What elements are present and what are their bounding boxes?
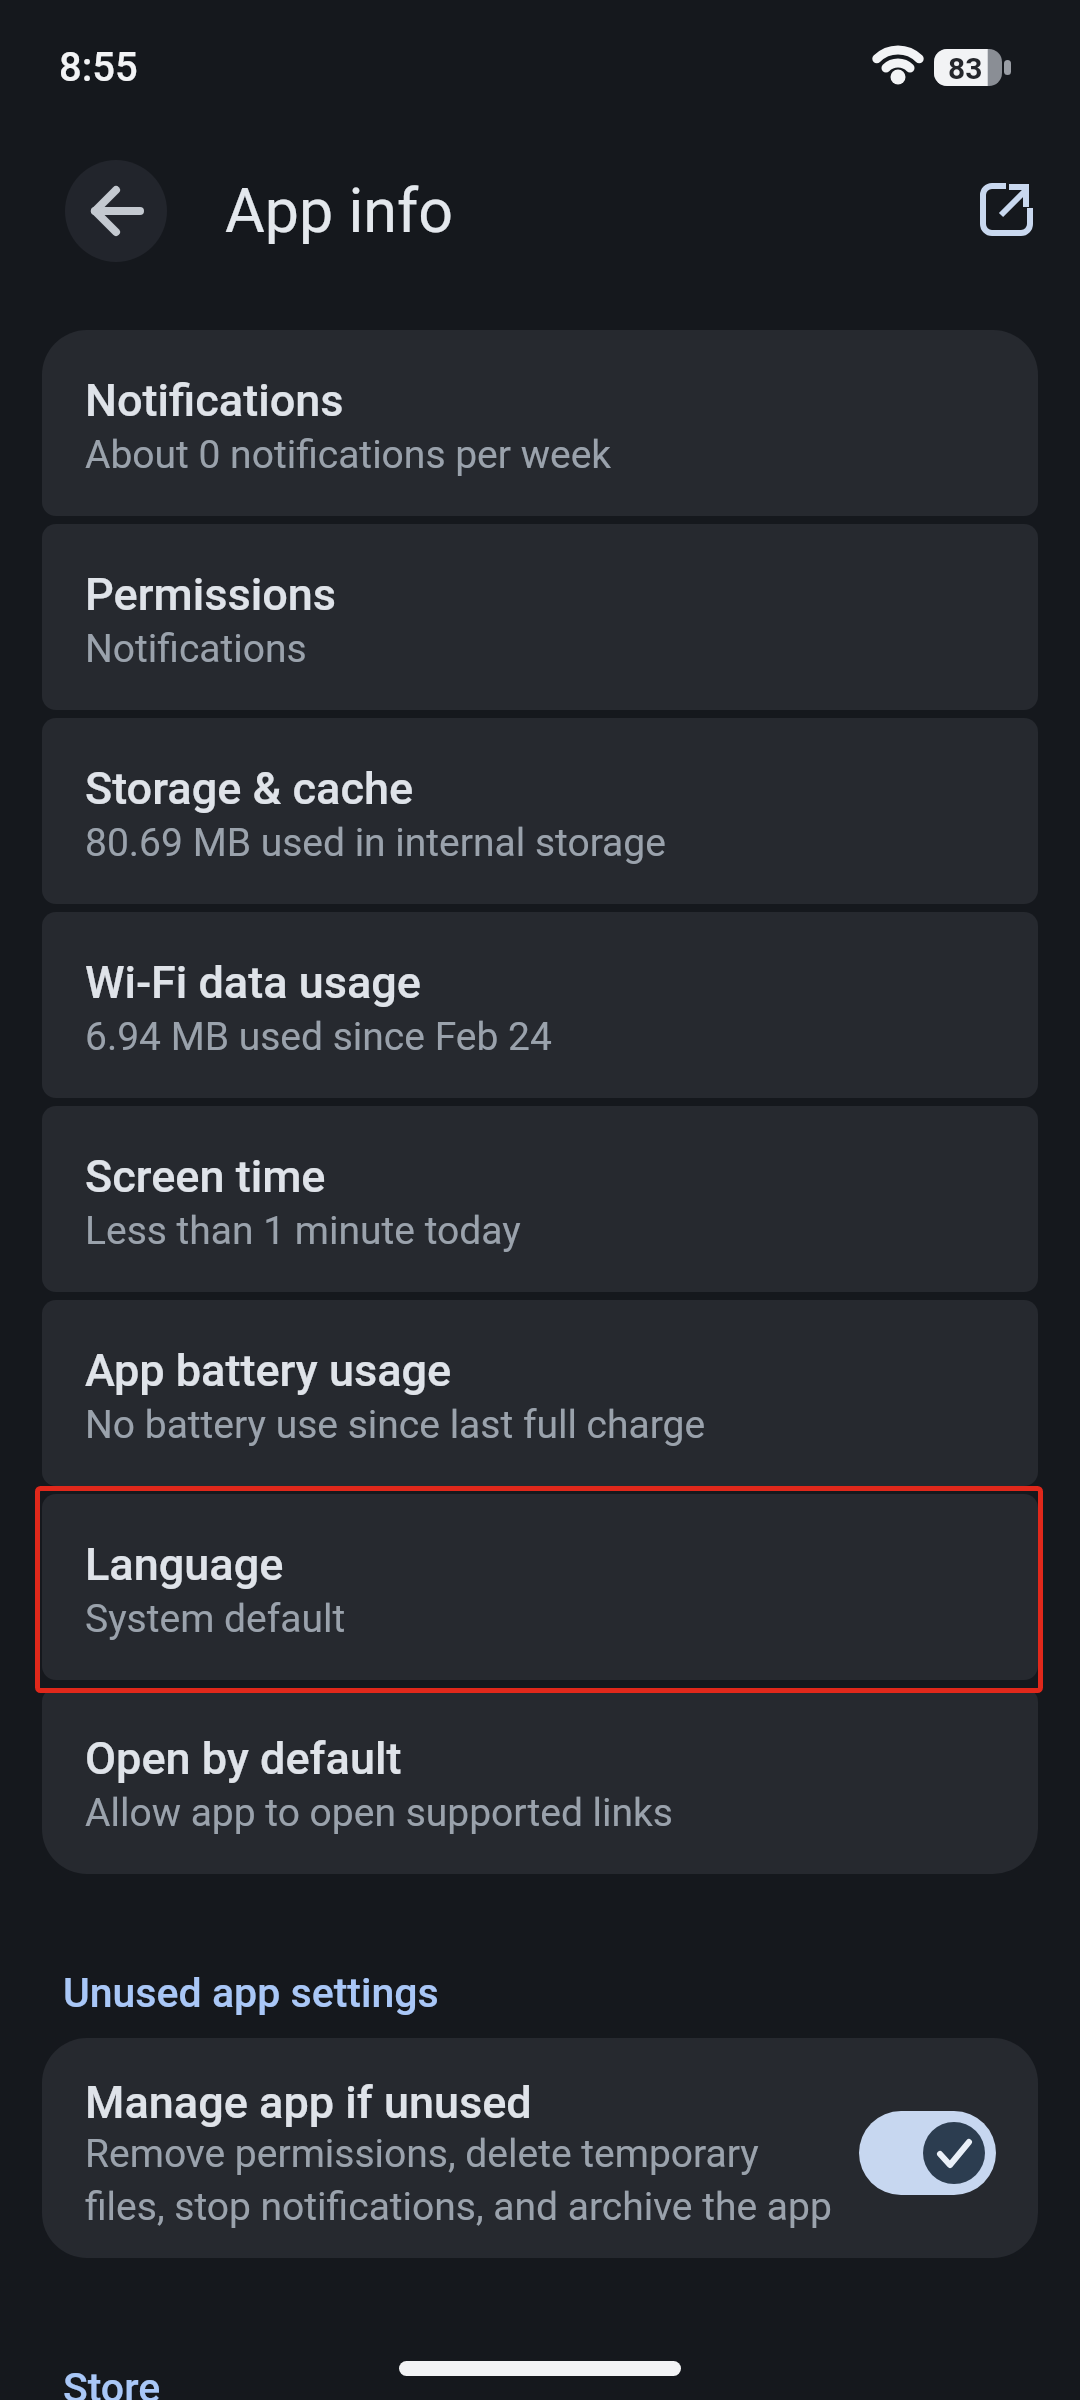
staticText: Open by default	[85, 1732, 402, 1785]
staticText: 83	[948, 51, 983, 86]
staticText: Notifications	[85, 374, 344, 427]
button[interactable]: Open by default	[42, 1688, 1038, 1874]
staticText: About 0 notifications per week	[85, 432, 612, 478]
staticText: Notifications	[85, 626, 307, 672]
staticText: Screen time	[85, 1150, 326, 1203]
staticText: No battery use since last full charge	[85, 1402, 706, 1448]
button[interactable]: Notifications	[42, 330, 1038, 516]
staticText: 6.94 MB used since Feb 24	[85, 1014, 552, 1060]
staticText: 8:55	[59, 44, 138, 91]
staticText: Manage app if unused	[85, 2076, 532, 2129]
button[interactable]: Manage app if unused	[42, 2038, 1038, 2258]
button[interactable]	[859, 2111, 996, 2195]
staticText: Permissions	[85, 568, 337, 621]
staticText: System default	[85, 1596, 346, 1642]
button[interactable]: Screen time	[42, 1106, 1038, 1292]
button[interactable]	[968, 171, 1046, 249]
staticText: Remove permissions, delete temporary fil…	[85, 2131, 832, 2229]
staticText: Wi-Fi data usage	[85, 956, 422, 1009]
button[interactable]: Storage & cache	[42, 718, 1038, 904]
button[interactable]: Wi-Fi data usage	[42, 912, 1038, 1098]
staticText: Language	[85, 1538, 284, 1591]
staticText: Storage & cache	[85, 762, 414, 815]
staticText: Allow app to open supported links	[85, 1790, 673, 1836]
staticText: Unused app settings	[63, 1969, 439, 2017]
button[interactable]: Permissions	[42, 524, 1038, 710]
staticText: App info	[225, 175, 453, 246]
staticText: Store	[63, 2364, 161, 2400]
staticText: 80.69 MB used in internal storage	[85, 820, 666, 866]
staticText: Less than 1 minute today	[85, 1208, 521, 1254]
staticText: App battery usage	[85, 1344, 452, 1397]
button[interactable]: App battery usage	[42, 1300, 1038, 1486]
button[interactable]	[65, 160, 167, 262]
button[interactable]: Language	[42, 1494, 1038, 1680]
